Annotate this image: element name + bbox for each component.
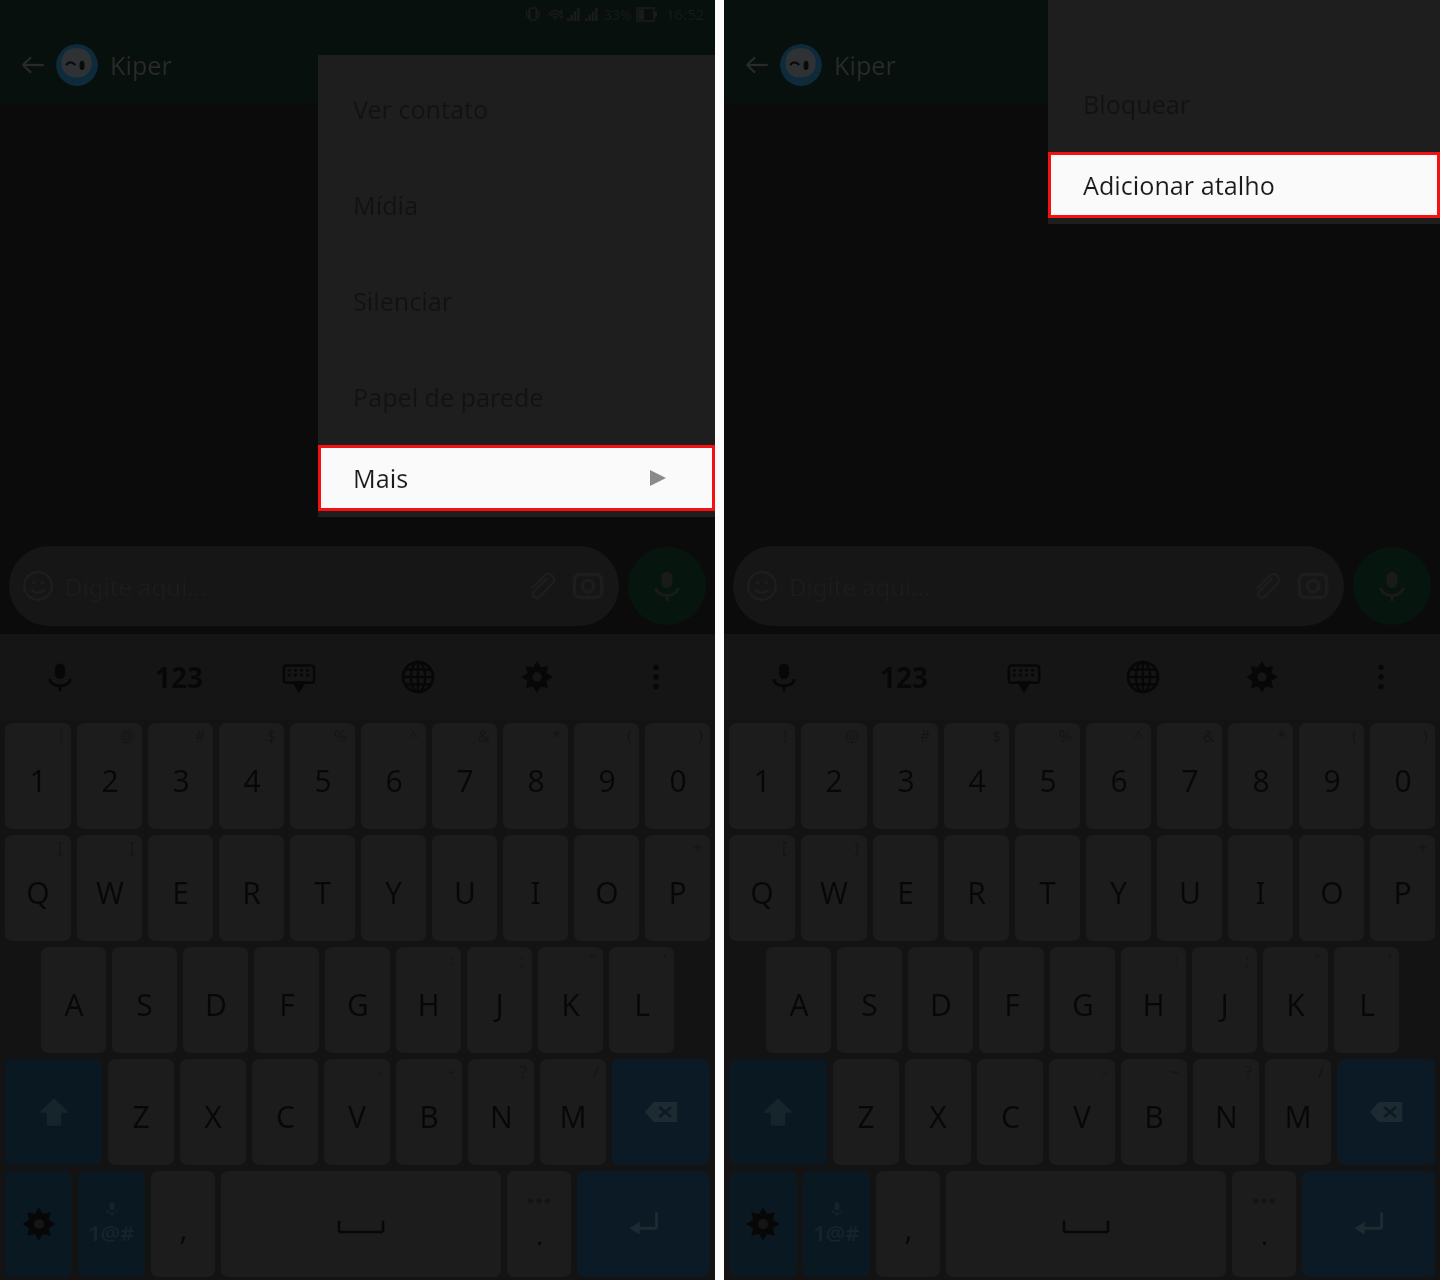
button[interactable] — [56, 44, 98, 86]
button[interactable]: [ — [729, 835, 795, 941]
button[interactable]: Camera — [571, 569, 605, 603]
button[interactable]: Mais — [321, 448, 712, 508]
button[interactable]: Back — [12, 44, 54, 86]
button[interactable]: ] — [801, 835, 867, 941]
button[interactable]: globe — [358, 634, 477, 720]
button[interactable]: Adicionar atalho — [1051, 155, 1437, 215]
button[interactable]: Record voice message — [628, 547, 706, 625]
button[interactable]: Camera — [1296, 569, 1330, 603]
button[interactable]: globe — [1083, 634, 1202, 720]
button[interactable]: ~ — [1121, 1059, 1187, 1165]
button[interactable]: key — [1337, 1059, 1435, 1165]
button[interactable]: Record voice message — [1353, 547, 1431, 625]
button[interactable]: ~ — [396, 1059, 462, 1165]
button[interactable]: / — [540, 1059, 606, 1165]
button[interactable]: key — [612, 1059, 710, 1165]
button[interactable] — [780, 44, 822, 86]
button[interactable]: ] — [77, 835, 142, 941]
button[interactable]: key — [729, 1171, 797, 1277]
